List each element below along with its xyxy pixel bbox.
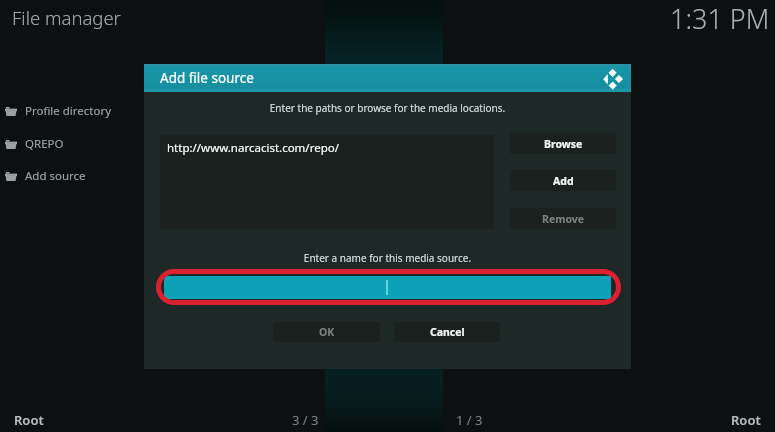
staticText: Remove (542, 212, 585, 226)
staticText: Browse (544, 137, 583, 151)
staticText: Add (553, 174, 574, 188)
staticText: QREPO (25, 136, 64, 152)
staticText: http://www.narcacist.com/repo/ (167, 140, 339, 156)
staticText: File manager (12, 5, 121, 30)
staticText: Enter a name for this media source. (144, 251, 631, 265)
staticText: 1:31 PM (670, 0, 770, 37)
button[interactable]: Cancel (394, 322, 500, 342)
staticText: 1 / 3 (456, 411, 483, 429)
staticText: Root (731, 411, 761, 429)
button[interactable]: Add source (0, 163, 140, 189)
staticText: Profile directory (25, 103, 112, 119)
button[interactable]: Kodi logo (602, 67, 622, 89)
button[interactable]: http://www.narcacist.com/repo/ (160, 135, 494, 229)
button[interactable]: Add file source (144, 64, 631, 92)
staticText: Root (14, 411, 44, 429)
staticText: Cancel (430, 325, 465, 339)
button[interactable]: QREPO (0, 131, 140, 157)
button[interactable]: OK (273, 322, 380, 342)
staticText: Enter the paths or browse for the media … (144, 101, 631, 115)
staticText: Add source (25, 168, 86, 184)
staticText: Add file source (160, 69, 254, 87)
button[interactable] (164, 276, 611, 299)
staticText: OK (319, 325, 335, 339)
button[interactable]: Add (510, 170, 616, 191)
button[interactable]: Remove (510, 208, 616, 229)
button[interactable]: Profile directory (0, 98, 140, 124)
staticText: 3 / 3 (292, 411, 319, 429)
button[interactable]: Browse (510, 133, 616, 154)
